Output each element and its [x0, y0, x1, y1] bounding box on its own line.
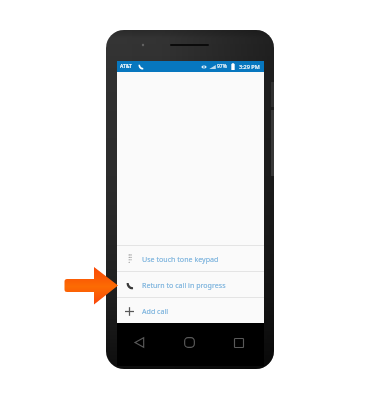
staticText: Add call — [142, 306, 169, 316]
staticText: 3:29 PM — [239, 63, 260, 70]
button[interactable]: Add call — [117, 298, 264, 323]
button[interactable]: Recent apps — [234, 338, 244, 348]
button[interactable]: Back — [134, 337, 145, 348]
button[interactable]: Home — [184, 337, 195, 348]
staticText: 97% — [217, 63, 227, 70]
button[interactable]: Return to call in progress — [117, 272, 264, 297]
staticText: AT&T — [120, 63, 132, 70]
staticText: Use touch tone keypad — [142, 254, 219, 264]
button[interactable]: Use touch tone keypad — [117, 246, 264, 271]
staticText: Return to call in progress — [142, 280, 226, 290]
